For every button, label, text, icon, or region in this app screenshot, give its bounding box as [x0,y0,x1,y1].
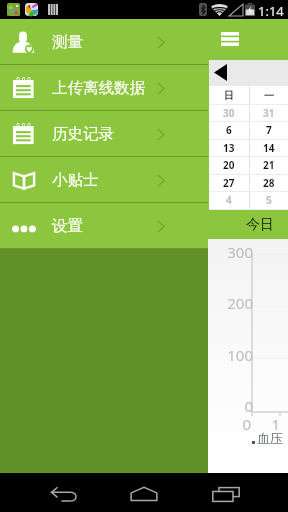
staticText: 4 [226,193,232,207]
staticText: 0 [242,414,251,434]
staticText: 30 [223,106,235,120]
staticText: 28 [263,176,275,190]
staticText: 上传离线数据 [52,78,145,98]
staticText: 1:14 [258,2,284,20]
staticText: 日 [224,89,234,102]
button[interactable]: 今日 [208,209,288,239]
staticText: 0 [244,396,253,416]
staticText: 13 [223,141,235,155]
staticText: 20 [223,158,235,172]
button[interactable]: 测量 [0,19,288,65]
button[interactable]: Recent apps [190,473,262,512]
staticText: 设置 [52,216,83,236]
staticText: 一 [264,89,274,102]
button[interactable]: Home [108,473,180,512]
staticText: 14 [263,141,275,155]
staticText: 1 [271,414,280,434]
staticText: 历史记录 [52,124,114,144]
staticText: 血压 [257,430,283,446]
staticText: 31 [263,106,275,120]
button[interactable]: 设置 [0,203,288,249]
button[interactable]: 上传离线数据 [0,65,288,111]
staticText: 测量 [52,32,83,52]
staticText: 6 [226,123,232,137]
staticText: 200 [227,293,253,313]
staticText: 小贴士 [52,170,99,190]
staticText: 27 [223,176,235,190]
button[interactable]: Back [28,473,100,512]
staticText: 今日 [246,216,274,234]
staticText: 7 [266,123,272,137]
button[interactable]: 历史记录 [0,111,288,157]
staticText: 300 [227,242,253,262]
staticText: 21 [263,158,275,172]
button[interactable]: Previous month [209,60,288,86]
button[interactable]: Menu [208,19,288,60]
button[interactable]: 小贴士 [0,157,288,203]
staticText: 100 [227,345,253,365]
staticText: 5 [266,193,272,207]
